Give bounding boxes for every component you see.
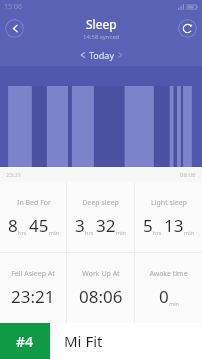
staticText: hrs [153, 229, 162, 236]
staticText: 0 [159, 285, 169, 308]
staticText: 13 [164, 214, 184, 237]
button[interactable]: Today [0, 44, 202, 66]
button[interactable]: Fell Asleep At [0, 253, 66, 323]
button[interactable]: Light sleep [135, 182, 202, 252]
staticText: hrs [18, 229, 27, 236]
staticText: 8 [8, 214, 18, 237]
staticText: 45 [29, 214, 49, 237]
staticText: 5 [143, 214, 153, 237]
staticText: Awake time [149, 269, 188, 279]
staticText: Deep sleep [82, 198, 119, 208]
button[interactable]: Sync [178, 19, 197, 38]
staticText: 08:06 [180, 171, 196, 179]
staticText: Light sleep [151, 198, 187, 208]
button[interactable]: In Bed For [0, 182, 66, 252]
staticText: Sleep [86, 16, 117, 32]
staticText: Work Up At [82, 269, 120, 279]
staticText: min [116, 229, 126, 236]
staticText: min [49, 229, 59, 236]
staticText: Today [89, 49, 114, 61]
staticText: 23:21 [11, 285, 55, 308]
button[interactable]: Awake time [135, 253, 202, 323]
staticText: min [169, 300, 179, 307]
staticText: In Bed For [17, 198, 51, 208]
button[interactable]: Back [5, 19, 24, 38]
button[interactable]: Deep sleep [67, 182, 134, 252]
staticText: min [184, 229, 194, 236]
staticText: 15:06 [4, 2, 22, 12]
staticText: hrs [85, 229, 94, 236]
staticText: 23:21 [6, 171, 22, 179]
button[interactable]: Work Up At [67, 253, 134, 323]
staticText: 32 [96, 214, 116, 237]
staticText: 08:06 [79, 285, 123, 308]
staticText: Fell Asleep At [11, 269, 55, 279]
staticText: 14:58 synced [83, 33, 120, 41]
staticText: #4 [16, 332, 34, 351]
staticText: 3 [75, 214, 85, 237]
staticText: Mi Fit [64, 331, 103, 351]
